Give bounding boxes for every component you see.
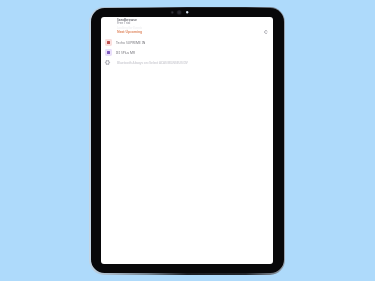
staticText: Bluetooth Always on: Select ACAS MI-NSEU…	[117, 61, 188, 65]
button[interactable]: Sync	[261, 27, 271, 37]
staticText: Techo SUPREME IN	[116, 40, 146, 44]
button[interactable]: Next Upcoming	[115, 28, 143, 35]
button[interactable]: IEI SPlus MR	[103, 47, 267, 56]
staticText: IEI SPlus MR	[116, 50, 136, 54]
staticText: Free Trial	[117, 21, 131, 25]
staticText: Sandbrowse	[117, 17, 137, 21]
button[interactable]: Bluetooth Always on: Select ACAS MI-NSEU…	[103, 59, 267, 66]
staticText: Next Upcoming	[117, 29, 143, 34]
button[interactable]: Techo SUPREME IN	[103, 37, 267, 46]
staticText: Looking for Events	[117, 26, 143, 30]
